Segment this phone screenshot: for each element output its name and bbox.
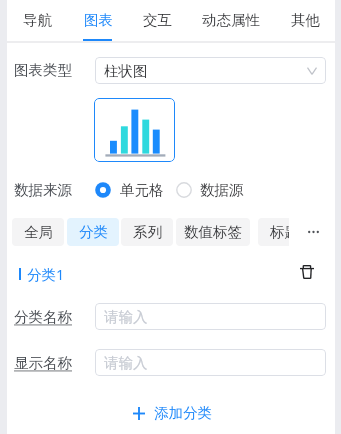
staticText: 请输入 <box>104 308 148 326</box>
staticText: 分类名称 <box>14 308 72 326</box>
button[interactable]: 请输入 <box>95 303 326 330</box>
staticText: 分类 <box>79 223 108 241</box>
button[interactable]: 导航 <box>21 9 54 31</box>
button[interactable]: 删除 <box>297 262 317 282</box>
staticText: 请输入 <box>104 354 148 372</box>
button[interactable]: 请输入 <box>95 349 326 376</box>
staticText: 导航 <box>23 11 52 29</box>
staticText: 标题 <box>270 223 289 241</box>
staticText: 添加分类 <box>154 404 212 422</box>
button[interactable]: 交互 <box>141 9 174 31</box>
staticText: 全局 <box>24 223 53 241</box>
staticText: 系列 <box>133 223 162 241</box>
staticText: 动态属性 <box>202 11 260 29</box>
button[interactable]: 柱状图 <box>95 57 326 84</box>
button[interactable]: 图表 <box>82 9 115 31</box>
staticText: 显示名称 <box>14 354 72 372</box>
button[interactable]: 全局 <box>12 218 64 246</box>
button[interactable]: 分类 <box>67 218 119 246</box>
staticText: 数值标签 <box>184 223 242 241</box>
button[interactable]: 添加分类 <box>133 401 212 425</box>
staticText: 柱状图 <box>104 62 148 80</box>
staticText: 图表类型 <box>14 61 72 79</box>
staticText: 其他 <box>291 11 320 29</box>
button[interactable]: 其他 <box>289 9 322 31</box>
staticText: 图表 <box>84 11 113 29</box>
staticText: 单元格 <box>120 181 164 199</box>
button[interactable]: 系列 <box>121 218 173 246</box>
staticText: 分类1 <box>27 264 65 284</box>
button[interactable]: 数值标签 <box>176 218 250 246</box>
staticText: 交互 <box>143 11 172 29</box>
button[interactable]: 柱状图 <box>94 98 175 162</box>
button[interactable]: 数据源 <box>176 179 244 201</box>
button[interactable]: 动态属性 <box>200 9 262 31</box>
button[interactable]: 标题 <box>258 218 289 246</box>
staticText: 数据来源 <box>14 181 72 199</box>
button[interactable]: 单元格 <box>95 179 164 201</box>
button[interactable]: 更多 <box>302 221 324 243</box>
staticText: 数据源 <box>200 181 244 199</box>
